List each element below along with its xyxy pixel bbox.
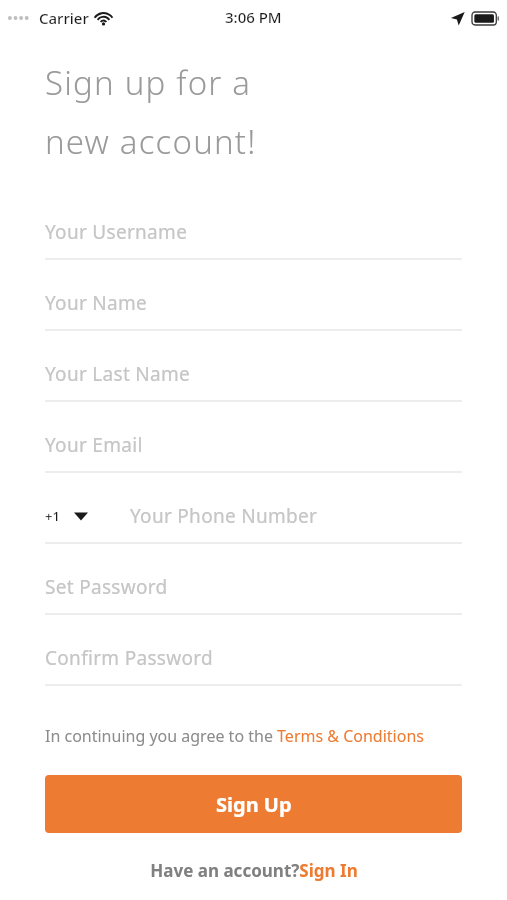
staticText: Sign Up [216,791,292,818]
button[interactable]: Set Password [0,561,507,632]
staticText: Your Username [45,219,188,245]
button[interactable]: Your Last Name [0,348,507,419]
button[interactable]: In continuing you agree to the Terms & C… [0,725,507,747]
button[interactable]: Have an account?Sign In [0,859,507,882]
staticText: Your Name [45,290,148,316]
button[interactable]: +1 [0,490,507,561]
other: Select country code [74,511,88,521]
button[interactable]: Confirm Password [0,632,507,703]
staticText: +1 [45,507,60,525]
staticText: Your Email [45,432,143,458]
staticText: Your Phone Number [130,503,318,529]
staticText: In continuing you agree to the Terms & C… [45,725,424,747]
button[interactable]: Your Email [0,419,507,490]
staticText: Sign up for a [45,60,252,105]
staticText: Set Password [45,574,168,600]
staticText: 3:06 PM [225,7,282,27]
button[interactable]: Your Name [0,277,507,348]
button[interactable]: Sign Up [45,775,462,833]
staticText: new account! [45,119,257,164]
staticText: Your Last Name [45,361,191,387]
button[interactable]: Your Username [0,206,507,277]
staticText: Have an account?Sign In [150,859,358,882]
staticText: Confirm Password [45,645,213,671]
staticText: Carrier [39,8,89,28]
